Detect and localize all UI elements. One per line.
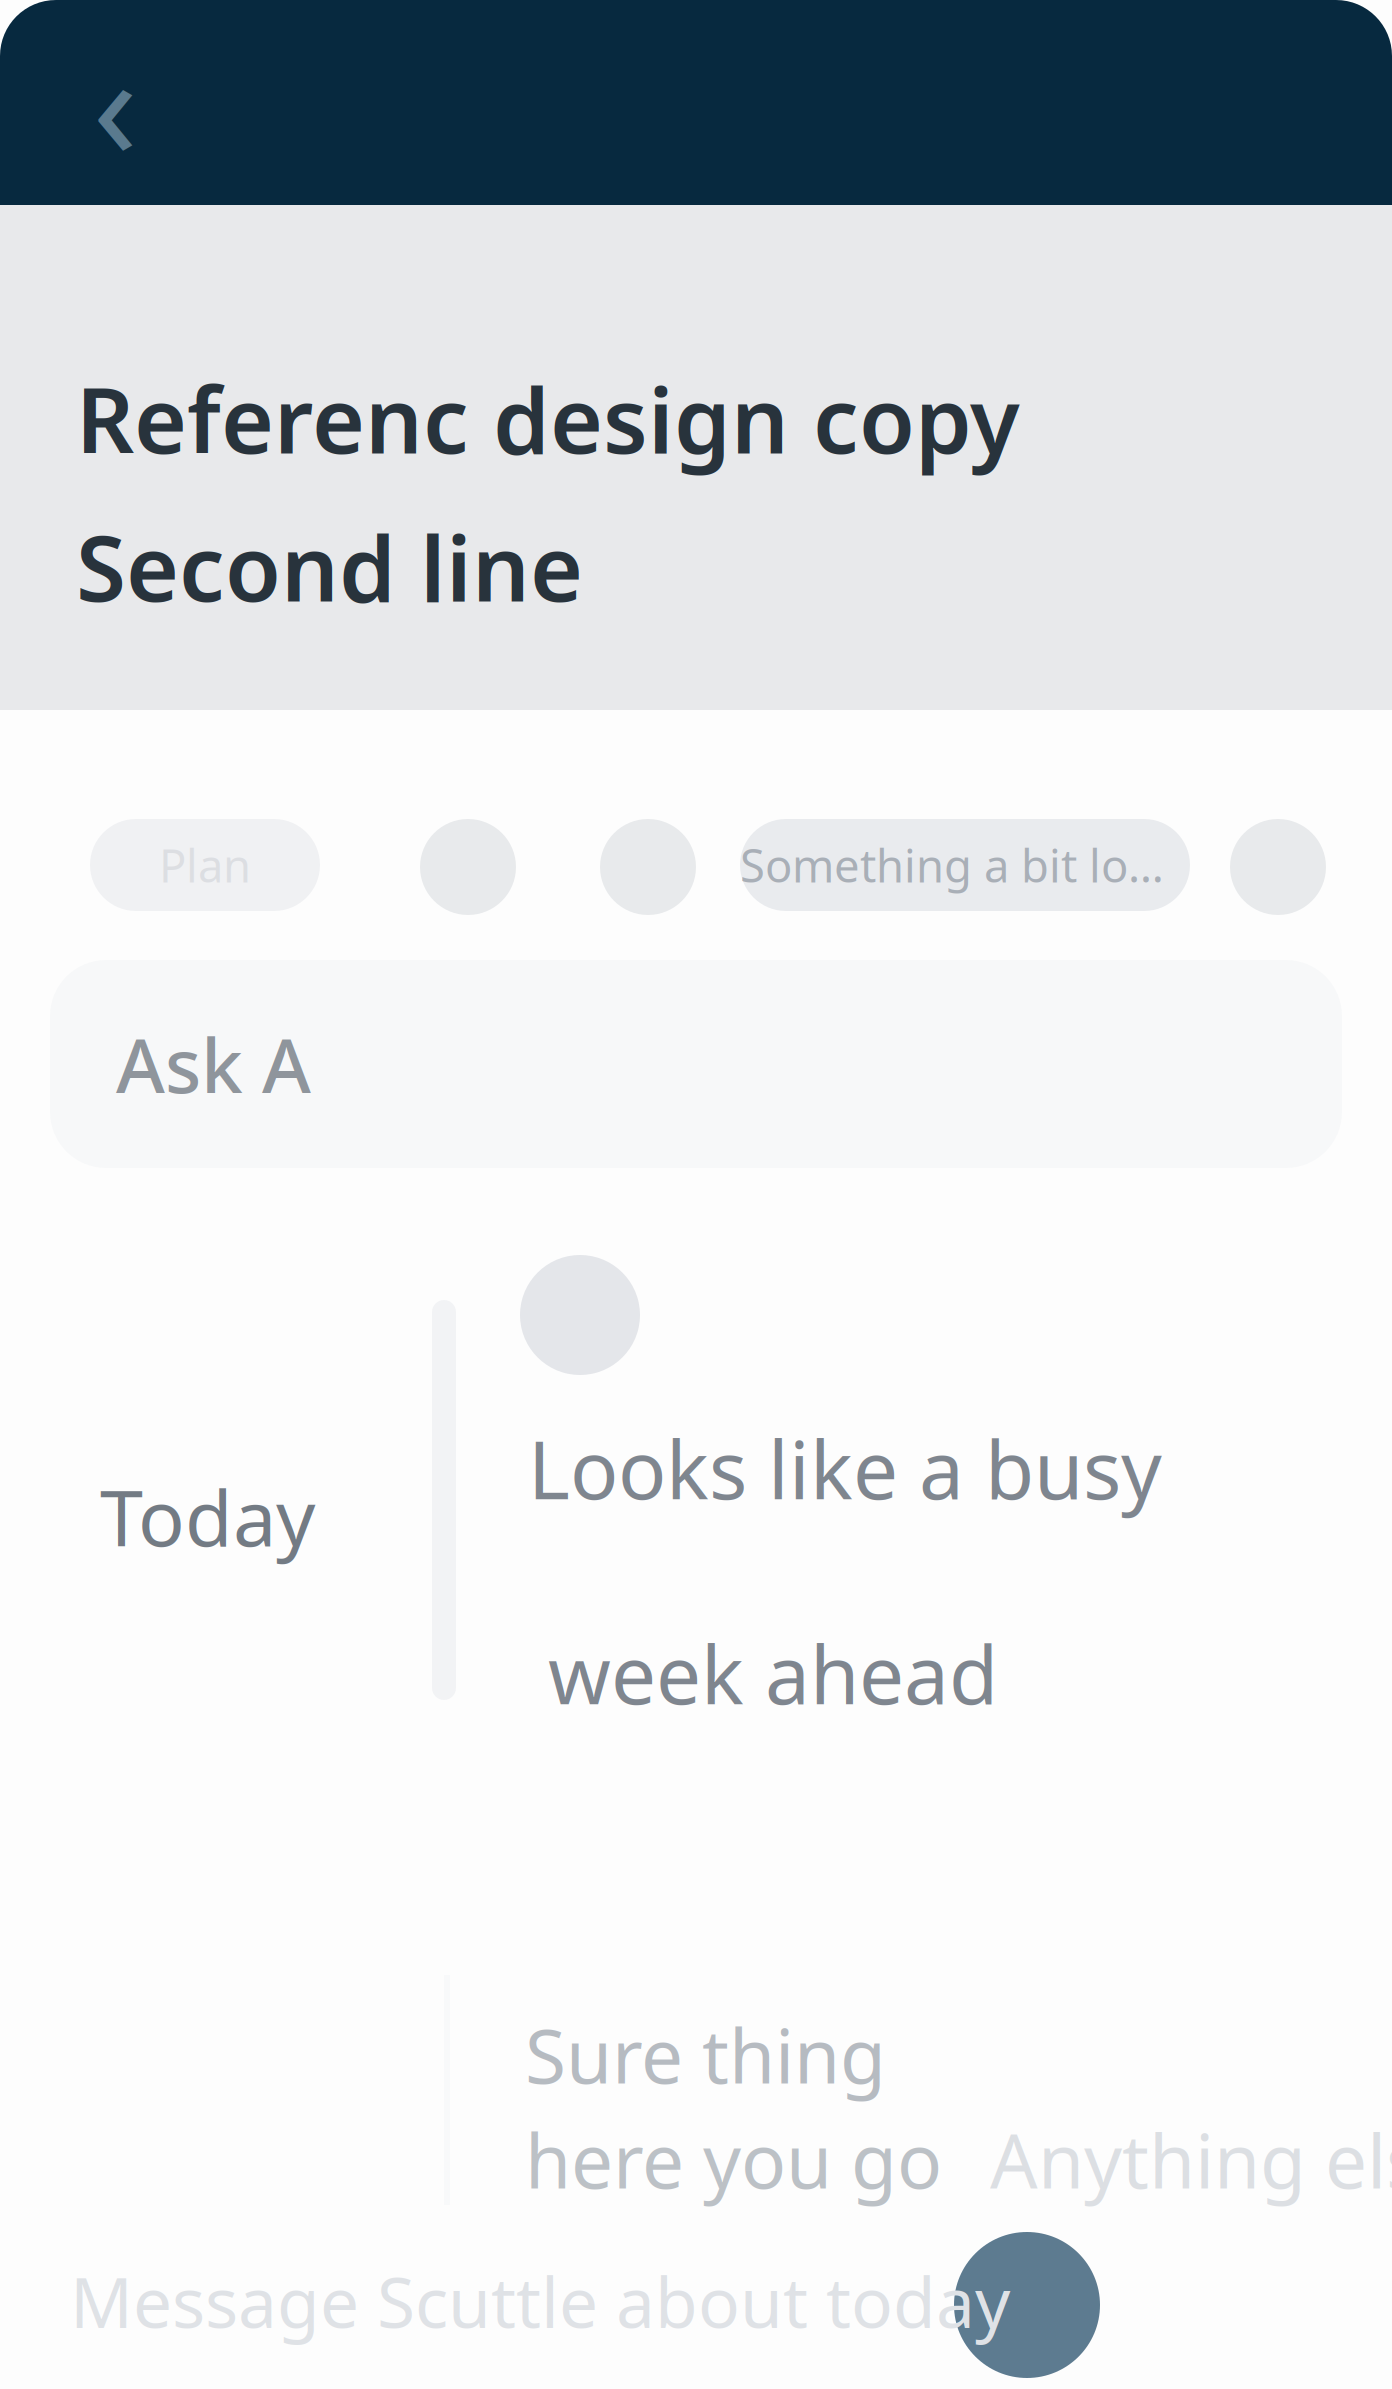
staticText: Today [100,1465,315,1568]
staticText: Plan [159,835,251,895]
button[interactable]: Photos [600,819,696,915]
button[interactable]: Something a bit longer [740,819,1190,911]
staticText: Something a bit longer [740,835,1190,895]
button[interactable]: Back [45,32,185,172]
staticText: Anything else [990,2110,1392,2209]
staticText: ‹ [92,5,137,199]
staticText: Looks like a busy [528,1415,1162,1521]
staticText: week ahead [548,1620,998,1726]
staticText: Ask A [116,1014,311,1114]
button[interactable]: Plan [90,819,320,911]
staticText: Sure thing [525,2005,886,2104]
staticText: here you go [525,2110,942,2209]
button[interactable]: More [1230,819,1326,915]
staticText: Referenc design copy [76,358,1020,478]
button[interactable]: Ask A [50,960,1342,1168]
staticText: Message Scuttle about today [70,2255,1010,2347]
staticText: Second line [76,506,583,626]
button[interactable]: Send [954,2232,1100,2378]
button[interactable]: Attach [420,819,516,915]
